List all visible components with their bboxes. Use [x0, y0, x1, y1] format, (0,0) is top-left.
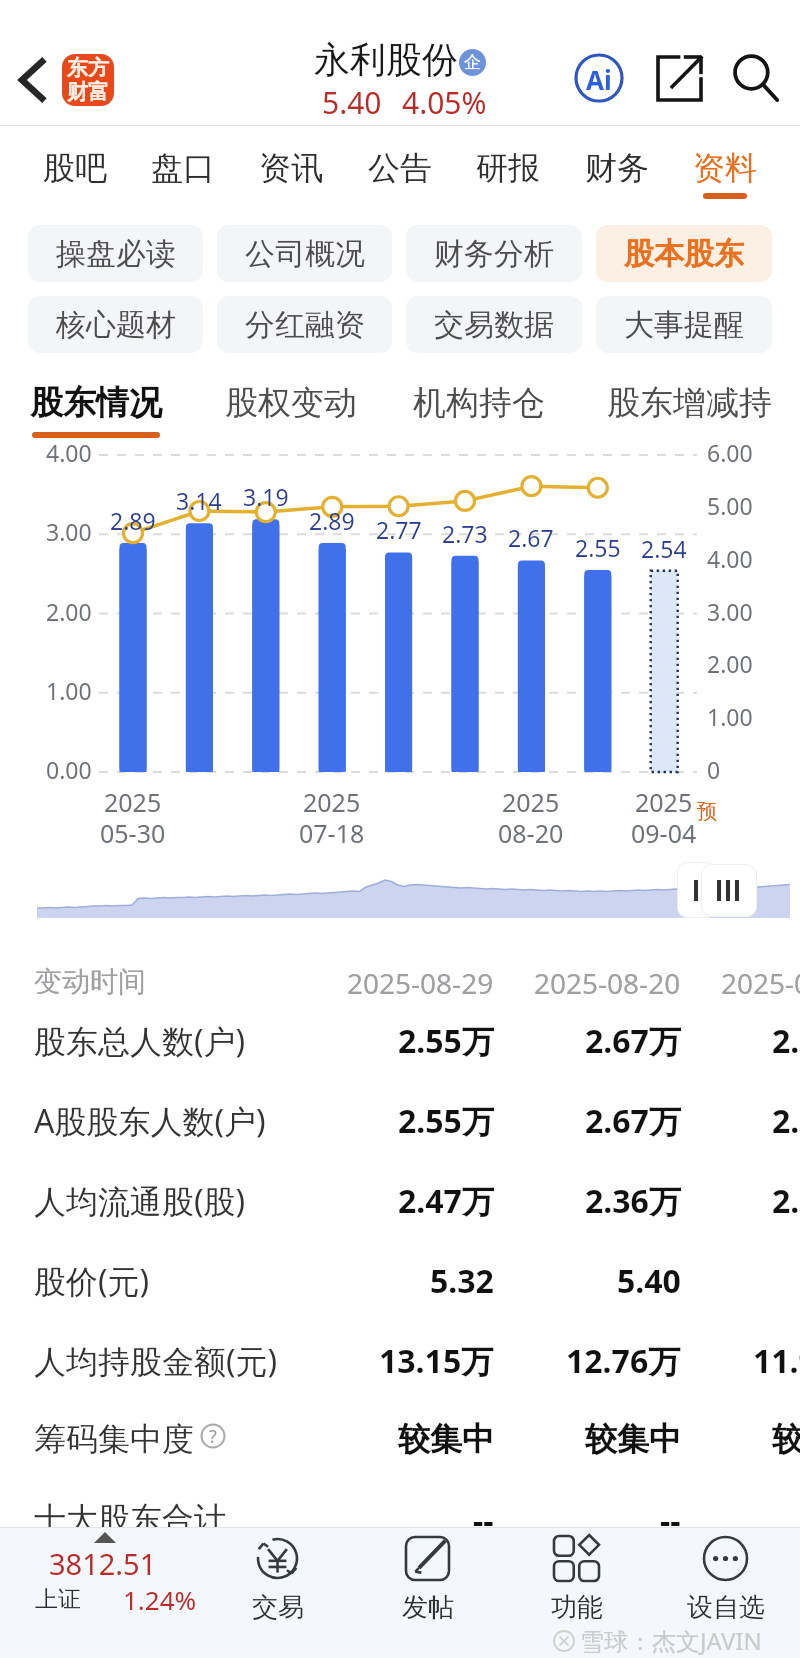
staticText: 操盘必读 [56, 235, 176, 273]
staticText: 3.19 [243, 481, 289, 512]
button[interactable]: 大事提醒 [596, 296, 772, 353]
staticText: 2025 [303, 785, 361, 819]
button[interactable]: Search [728, 50, 784, 106]
staticText: 股东增减持 [607, 382, 772, 424]
staticText: 公告 [368, 148, 432, 188]
staticText: ? [209, 1424, 217, 1449]
button[interactable] [0, 1080, 800, 1160]
staticText: 07-18 [299, 816, 365, 850]
staticText: 5.00 [707, 490, 753, 521]
staticText: 功能 [551, 1591, 603, 1624]
staticText: 设自选 [687, 1591, 765, 1624]
staticText: -- [473, 1499, 494, 1543]
staticText: 2.55万 [772, 1019, 800, 1063]
staticText: 股权变动 [225, 382, 357, 424]
button[interactable]: 股东增减持 [594, 378, 784, 446]
button[interactable]: 公告 [346, 132, 454, 204]
staticText: 4.00 [46, 437, 92, 468]
button[interactable] [0, 1320, 800, 1400]
button[interactable]: 操盘必读 [28, 225, 203, 282]
button[interactable]: 研报 [454, 132, 562, 204]
staticText: 东方 财富 [67, 55, 109, 105]
button[interactable]: 股吧 [21, 132, 129, 204]
button[interactable]: 盘口 [129, 132, 237, 204]
staticText: 股东总人数(户) [34, 1019, 246, 1063]
button[interactable]: 股权变动 [196, 378, 386, 446]
button[interactable]: 发帖 [366, 1529, 490, 1639]
staticText: 2.55万 [398, 1099, 494, 1143]
staticText: 3.00 [707, 596, 753, 627]
button[interactable]: 机构持仓 [384, 378, 574, 446]
staticText: A股股东人数(户) [34, 1099, 266, 1143]
button[interactable]: Share [651, 50, 707, 106]
button[interactable]: 财务 [563, 132, 671, 204]
staticText: 2025-08-10 [721, 964, 800, 1002]
staticText: 2025 [635, 785, 693, 819]
button[interactable] [0, 1400, 800, 1480]
button[interactable]: Shanghai index [14, 1531, 214, 1639]
staticText: 2.77 [376, 514, 422, 545]
staticText: 2.36万 [585, 1179, 681, 1223]
staticText: 2025 [502, 785, 560, 819]
staticText: 2.67 [508, 522, 554, 553]
staticText: 2.55 [575, 532, 621, 563]
button[interactable] [0, 1160, 800, 1240]
button[interactable]: 财务分析 [406, 225, 582, 282]
button[interactable]: 公司概况 [217, 225, 392, 282]
staticText: 交易数据 [434, 306, 554, 344]
staticText: 盘口 [151, 148, 215, 188]
button[interactable]: 功能 [515, 1529, 639, 1639]
button[interactable]: 东方 财富 [62, 54, 114, 106]
button[interactable]: 股本股东 [596, 225, 772, 282]
staticText: 财务 [585, 148, 649, 188]
button[interactable]: 分红融资 [217, 296, 392, 353]
staticText: 1.00 [46, 675, 92, 706]
staticText: 2.67万 [585, 1019, 681, 1063]
staticText: 3.14 [176, 485, 222, 516]
staticText: 08-20 [498, 816, 564, 850]
staticText: 6.00 [707, 437, 753, 468]
staticText: 2.47万 [398, 1179, 494, 1223]
staticText: 财务分析 [434, 235, 554, 273]
staticText: 股吧 [43, 148, 107, 188]
staticText: 2.55万 [398, 1019, 494, 1063]
staticText: 大事提醒 [624, 306, 744, 344]
staticText: 永利股份 [314, 37, 458, 82]
button[interactable]: Multi chart [701, 864, 757, 917]
staticText: 人均持股金额(元) [34, 1339, 278, 1383]
button[interactable]: 资料 [671, 132, 779, 204]
staticText: 2.89 [110, 505, 156, 536]
staticText: 13.15万 [379, 1339, 494, 1383]
staticText: 预 [697, 799, 717, 824]
staticText: 筹码集中度 [34, 1419, 194, 1459]
staticText: 3812.51 [49, 1544, 157, 1583]
staticText: 09-04 [631, 816, 697, 850]
button[interactable] [0, 1240, 800, 1320]
button[interactable]: 设自选 [664, 1529, 788, 1639]
staticText: 发帖 [402, 1591, 454, 1624]
staticText: 2025-08-20 [534, 964, 681, 1002]
button[interactable] [0, 1000, 800, 1080]
button[interactable]: 核心题材 [28, 296, 203, 353]
button[interactable]: 股东情况 [1, 378, 191, 446]
staticText: 变动时间 [34, 964, 146, 999]
button[interactable]: 交易 [216, 1529, 340, 1639]
staticText: 较集中 [398, 1419, 494, 1459]
staticText: 2.55万 [772, 1099, 800, 1143]
button[interactable]: AI assistant [571, 50, 627, 106]
staticText: 十大股东合计 [34, 1499, 226, 1539]
button[interactable]: Single chart [677, 862, 717, 918]
staticText: 2025-08-29 [347, 964, 494, 1002]
staticText: 4.00 [707, 543, 753, 574]
staticText: 股价(元) [34, 1259, 150, 1303]
button[interactable]: 资讯 [237, 132, 345, 204]
button[interactable]: 交易数据 [406, 296, 582, 353]
staticText: 5.40 [617, 1259, 681, 1303]
staticText: 2025 [104, 785, 162, 819]
button[interactable]: Back [2, 50, 62, 110]
staticText: -- [660, 1499, 681, 1543]
button[interactable] [0, 1480, 800, 1560]
staticText: 较集中 [585, 1419, 681, 1459]
staticText: 2.00 [707, 648, 753, 679]
staticText: 企 [464, 52, 481, 73]
